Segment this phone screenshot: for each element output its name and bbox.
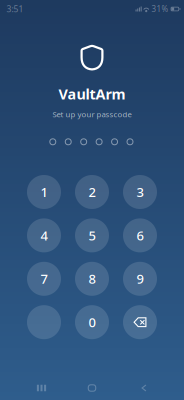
staticText: 5	[88, 226, 95, 244]
button[interactable]: Blank	[27, 305, 61, 339]
button[interactable]: 8	[75, 262, 109, 296]
staticText: 9	[136, 270, 143, 288]
button[interactable]: 4	[27, 218, 61, 252]
button[interactable]: 3	[123, 175, 157, 209]
button[interactable]: 6	[123, 218, 157, 252]
button[interactable]: 9	[123, 262, 157, 296]
staticText: 3	[136, 183, 143, 201]
button[interactable]: 5	[75, 218, 109, 252]
staticText: 2	[88, 183, 95, 201]
staticText: 4	[40, 226, 47, 244]
button[interactable]: 7	[27, 262, 61, 296]
staticText: 8	[88, 270, 95, 288]
button[interactable]: 0	[75, 305, 109, 339]
button[interactable]: 2	[75, 175, 109, 209]
button[interactable]: Delete	[123, 305, 157, 339]
staticText: 3:51	[6, 3, 23, 15]
button[interactable]: Recents	[25, 377, 57, 399]
staticText: 0	[88, 313, 95, 331]
staticText: 1	[40, 183, 47, 201]
staticText: 31%	[151, 4, 168, 14]
button[interactable]: Home	[76, 377, 108, 399]
staticText: VaultArm	[58, 84, 125, 104]
staticText: 7	[40, 270, 47, 288]
button[interactable]: 1	[27, 175, 61, 209]
button[interactable]: Back	[128, 377, 160, 399]
staticText: 6	[136, 226, 143, 244]
staticText: Set up your passcode	[52, 109, 131, 119]
